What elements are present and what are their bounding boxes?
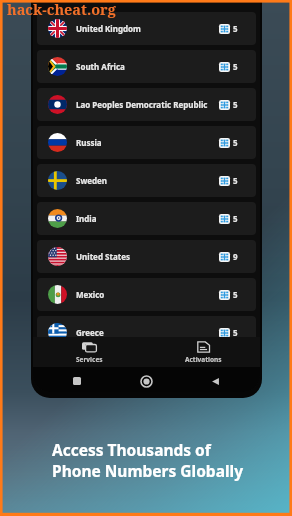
button[interactable]: Greece (37, 316, 256, 349)
button[interactable]: Russia (37, 126, 256, 159)
staticText: Mexico (76, 289, 219, 300)
staticText: 5 (233, 23, 238, 34)
staticText: United States (76, 251, 219, 262)
button[interactable]: Activations (146, 337, 260, 367)
button[interactable]: Services (33, 337, 146, 367)
staticText: Access Thousands of (52, 439, 211, 460)
staticText: India (76, 213, 219, 224)
staticText: Sweden (76, 175, 219, 186)
button[interactable]: India (37, 202, 256, 235)
button[interactable]: Sweden (37, 164, 256, 197)
other: Recents (73, 377, 81, 385)
staticText: United Kingdom (76, 23, 219, 34)
staticText: 5 (233, 137, 238, 148)
staticText: South Africa (76, 61, 219, 72)
staticText: Russia (76, 137, 219, 148)
staticText: hack-cheat.org (7, 0, 116, 19)
button[interactable]: United Kingdom (37, 12, 256, 45)
staticText: Activations (185, 355, 222, 364)
other: Back (211, 377, 220, 386)
staticText: 5 (233, 61, 238, 72)
staticText: 5 (233, 175, 238, 186)
button[interactable]: Mexico (37, 278, 256, 311)
button[interactable]: Lao Peoples Democratic Republic (37, 88, 256, 121)
button[interactable]: South Africa (37, 50, 256, 83)
button[interactable]: United States (37, 240, 256, 273)
staticText: 5 (233, 99, 238, 110)
staticText: Greece (76, 327, 219, 338)
other: Home (141, 376, 152, 387)
staticText: 9 (233, 251, 238, 262)
staticText: Services (76, 355, 103, 364)
staticText: 5 (233, 327, 238, 338)
staticText: 5 (233, 289, 238, 300)
staticText: Lao Peoples Democratic Republic (76, 99, 219, 110)
staticText: 5 (233, 213, 238, 224)
staticText: Phone Numbers Globally (52, 460, 244, 481)
